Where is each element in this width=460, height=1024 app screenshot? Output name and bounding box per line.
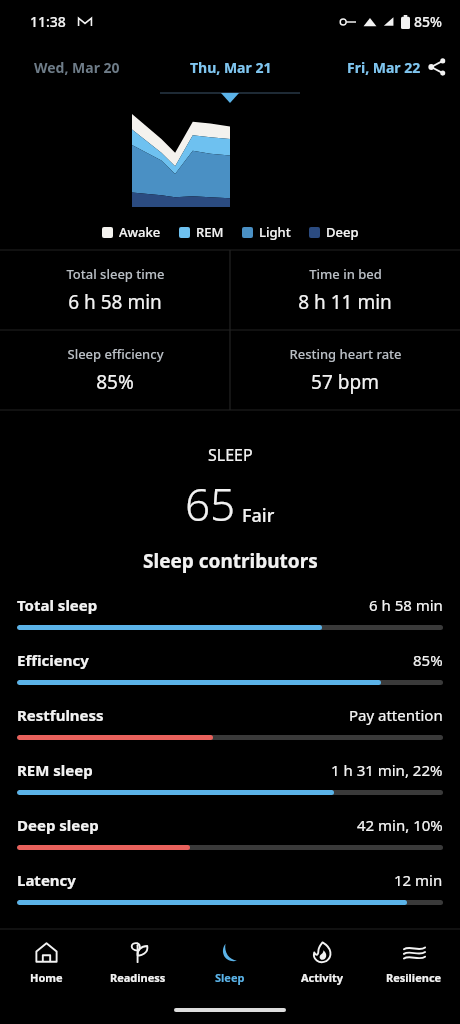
button[interactable]: Sleep efficiency — [0, 330, 230, 410]
staticText: Sleep efficiency — [67, 345, 164, 363]
staticText: Readiness — [110, 970, 166, 985]
button[interactable]: Wed, Mar 20 — [0, 42, 154, 92]
button[interactable]: Fri, Mar 22 — [307, 42, 460, 92]
button[interactable]: Efficiency — [0, 641, 460, 696]
staticText: Activity — [301, 970, 343, 985]
button[interactable]: REM sleep — [0, 751, 460, 806]
staticText: Resting heart rate — [289, 345, 402, 363]
staticText: Deep sleep — [17, 815, 99, 835]
staticText: Light — [259, 223, 291, 241]
staticText: 57 bpm — [311, 369, 379, 395]
staticText: 11:38 — [30, 12, 66, 31]
staticText: 85% — [96, 369, 134, 395]
button[interactable]: Thu, Mar 21 — [154, 42, 307, 92]
staticText: 85% — [413, 650, 443, 670]
staticText: REM — [196, 223, 224, 241]
staticText: Latency — [17, 870, 76, 890]
button[interactable]: Time in bed — [230, 250, 460, 330]
staticText: Restfulness — [17, 705, 104, 725]
button[interactable]: Latency — [0, 861, 460, 916]
staticText: REM sleep — [17, 760, 93, 780]
button[interactable]: Readiness — [92, 930, 184, 996]
staticText: Sleep contributors — [143, 548, 318, 574]
button[interactable]: Total sleep — [0, 586, 460, 641]
staticText: Fri, Mar 22 — [347, 58, 421, 77]
button[interactable]: Deep sleep — [0, 806, 460, 861]
button[interactable]: Resilience — [368, 930, 460, 996]
staticText: 8 h 11 min — [298, 289, 392, 315]
staticText: 65 — [185, 474, 236, 534]
staticText: Total sleep — [17, 595, 98, 615]
staticText: 6 h 58 min — [369, 595, 443, 615]
staticText: 6 h 58 min — [68, 289, 162, 315]
button[interactable]: Restfulness — [0, 696, 460, 751]
button[interactable]: Total sleep time — [0, 250, 230, 330]
staticText: Awake — [119, 223, 161, 241]
staticText: 1 h 31 min, 22% — [331, 760, 443, 780]
button[interactable]: Home — [0, 930, 92, 996]
staticText: Wed, Mar 20 — [34, 58, 120, 77]
staticText: Thu, Mar 21 — [190, 58, 272, 77]
staticText: Efficiency — [17, 650, 89, 670]
staticText: Deep — [326, 223, 359, 241]
button[interactable]: Resting heart rate — [230, 330, 460, 410]
staticText: Pay attention — [349, 705, 443, 725]
staticText: 42 min, 10% — [357, 815, 443, 835]
staticText: Time in bed — [309, 265, 382, 283]
button[interactable]: Activity — [276, 930, 368, 996]
staticText: Fair — [242, 503, 275, 528]
button[interactable]: Share — [420, 50, 454, 84]
staticText: Resilience — [386, 970, 442, 985]
button[interactable]: Sleep — [184, 930, 276, 996]
staticText: 85% — [414, 12, 442, 31]
staticText: Total sleep time — [66, 265, 165, 283]
staticText: Sleep — [215, 970, 245, 985]
staticText: 12 min — [394, 870, 443, 890]
staticText: Home — [30, 970, 63, 985]
staticText: SLEEP — [208, 444, 253, 466]
